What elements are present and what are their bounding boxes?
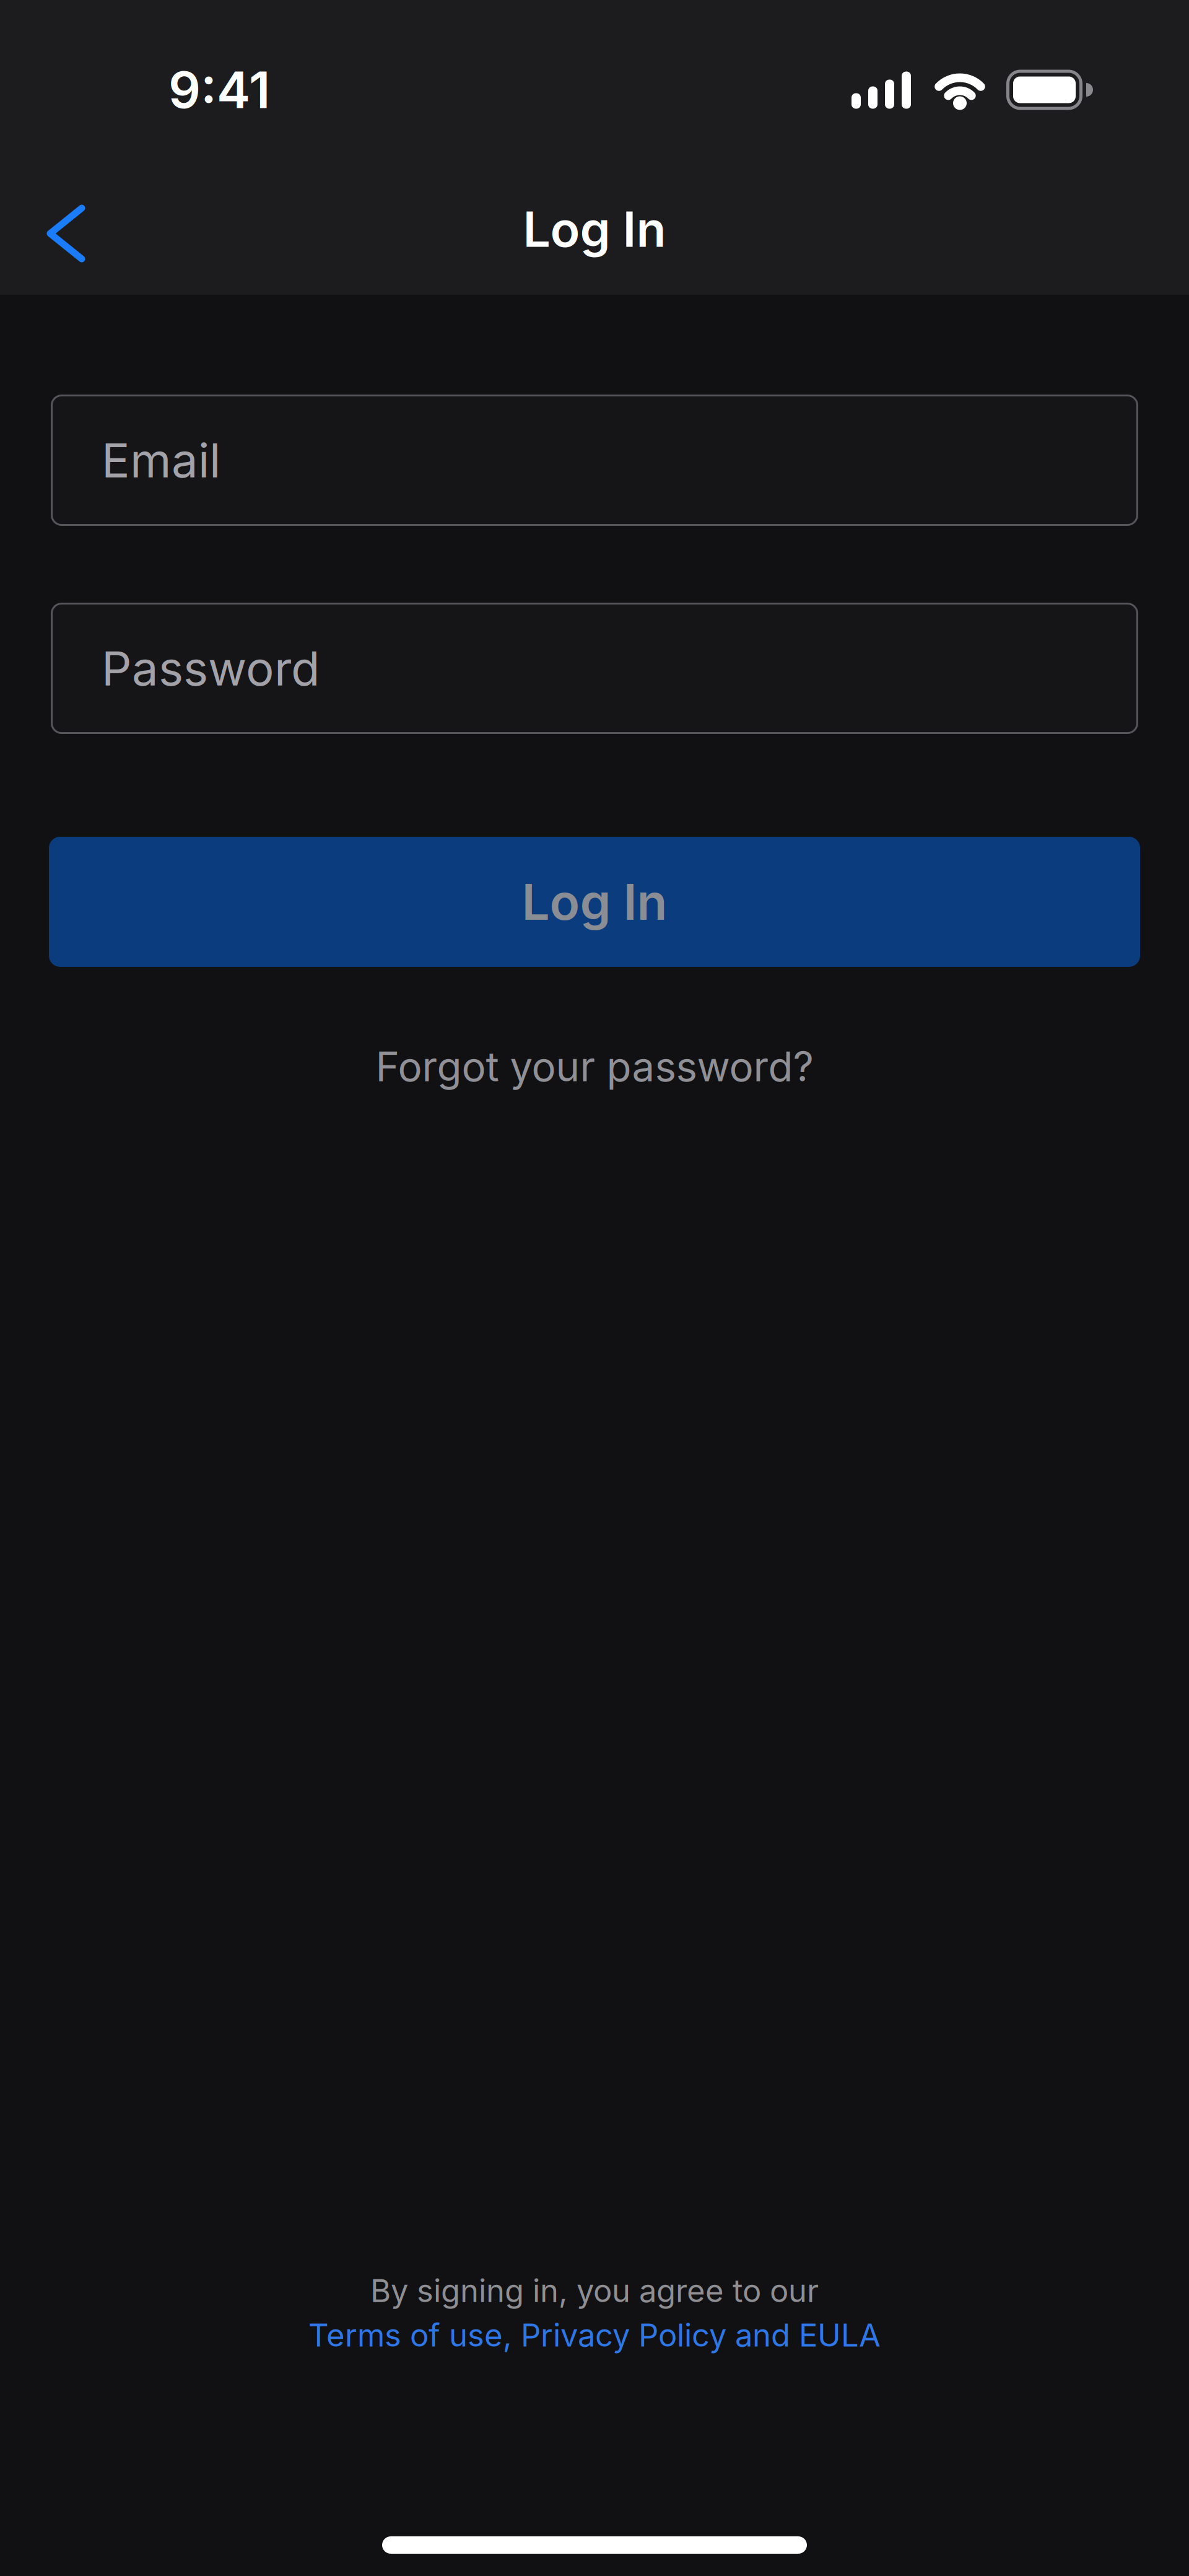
staticText: Password bbox=[102, 641, 320, 696]
button[interactable]: Log In bbox=[49, 837, 1140, 967]
button[interactable]: Password bbox=[51, 603, 1138, 734]
staticText: Forgot your password? bbox=[376, 1043, 813, 1090]
button[interactable]: Email bbox=[51, 395, 1138, 526]
button[interactable] bbox=[0, 199, 89, 259]
staticText: Log In bbox=[522, 873, 667, 931]
button[interactable]: Terms of use, Privacy Policy and EULA bbox=[308, 2317, 881, 2354]
staticText: 9:41 bbox=[168, 60, 270, 119]
staticText: Email bbox=[102, 432, 220, 488]
staticText: Terms of use, Privacy Policy and EULA bbox=[308, 2317, 881, 2354]
staticText: Log In bbox=[523, 200, 666, 258]
button[interactable]: Forgot your password? bbox=[376, 1036, 813, 1098]
staticText: By signing in, you agree to our bbox=[370, 2272, 819, 2309]
